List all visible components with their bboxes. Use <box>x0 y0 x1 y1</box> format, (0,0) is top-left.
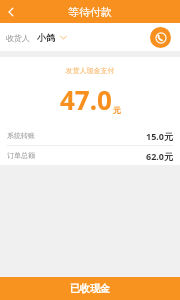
button[interactable]: Call recipient <box>150 27 171 48</box>
staticText: 15.0元 <box>146 130 173 142</box>
staticText: 订单总额 <box>7 151 35 160</box>
button[interactable]: Back <box>0 1 22 23</box>
staticText: 收货人 <box>6 33 30 43</box>
button[interactable]: 订单总额 <box>7 146 173 165</box>
staticText: 发货人现金支付 <box>0 66 180 75</box>
staticText: 47.0 <box>60 82 112 117</box>
button[interactable]: 系统转账 <box>7 126 173 145</box>
button[interactable]: 收货人 <box>6 32 67 43</box>
staticText: 系统转账 <box>7 131 35 140</box>
button[interactable]: 已收现金 <box>0 277 180 300</box>
staticText: 已收现金 <box>70 282 110 295</box>
staticText: 62.0元 <box>146 150 173 162</box>
staticText: 等待付款 <box>68 5 112 19</box>
staticText: 小鸽 <box>37 32 55 43</box>
staticText: 元 <box>113 105 121 115</box>
